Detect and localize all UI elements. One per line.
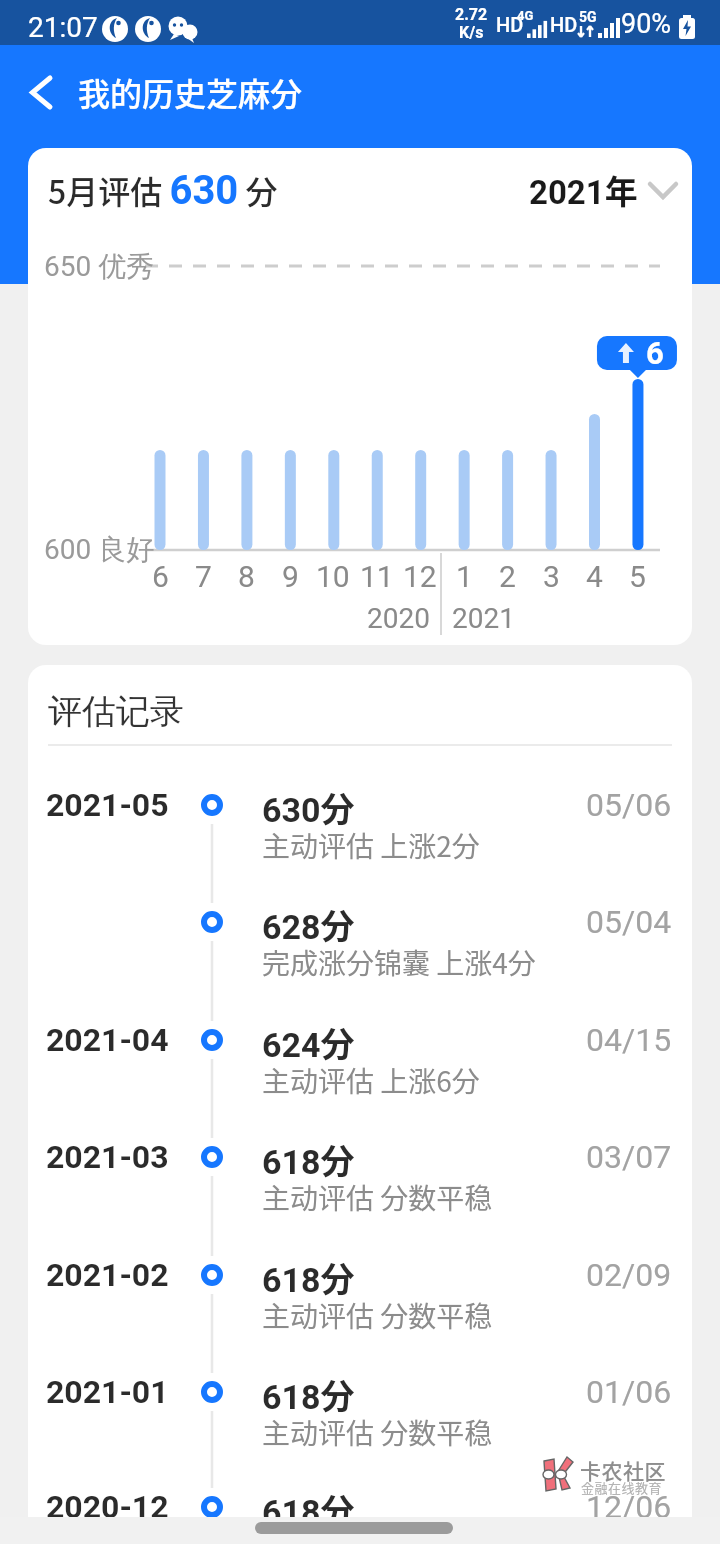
staticText: 7: [195, 559, 212, 594]
staticText: 650 优秀: [44, 249, 155, 283]
button[interactable]: [28, 1449, 692, 1544]
staticText: 10: [316, 559, 350, 594]
staticText: 630分: [262, 783, 355, 827]
staticText: 11: [360, 559, 394, 594]
staticText: 2021-02: [46, 1256, 169, 1294]
staticText: 2021-03: [46, 1138, 169, 1176]
staticText: 我的历史芝麻分: [78, 69, 303, 115]
staticText: 评估记录: [48, 690, 184, 733]
staticText: 5: [629, 559, 646, 594]
button[interactable]: [28, 747, 692, 863]
staticText: 90%: [621, 8, 672, 40]
staticText: 618分: [262, 1485, 355, 1529]
staticText: 21:07: [28, 11, 98, 44]
staticText: HD: [550, 13, 578, 36]
staticText: 02/09: [586, 1256, 672, 1294]
staticText: 5G: [579, 9, 597, 25]
staticText: 2021年: [529, 166, 638, 214]
button[interactable]: [28, 1217, 692, 1333]
staticText: K/s: [459, 23, 484, 42]
staticText: 2021-04: [46, 1021, 169, 1059]
button[interactable]: [28, 864, 692, 980]
staticText: 2020-12: [46, 1488, 169, 1526]
staticText: 3: [543, 559, 560, 594]
button[interactable]: [14, 69, 68, 115]
staticText: 完成涨分锦囊 上涨4分: [262, 942, 536, 982]
staticText: 1: [456, 559, 473, 594]
staticText: 03/07: [586, 1138, 672, 1176]
staticText: 618分: [262, 1253, 355, 1297]
staticText: HD: [496, 13, 524, 36]
staticText: 624分: [262, 1018, 355, 1062]
staticText: 628分: [262, 900, 355, 944]
staticText: 5月评估 630 分: [48, 167, 278, 214]
staticText: 主动评估 分数平稳: [262, 1295, 493, 1335]
staticText: 2020: [367, 602, 430, 635]
staticText: 9: [282, 559, 299, 594]
staticText: 600 良好: [44, 532, 155, 566]
staticText: 主动评估 上涨2分: [262, 825, 480, 865]
staticText: 12/06: [586, 1488, 672, 1526]
staticText: 04/15: [586, 1021, 672, 1059]
staticText: 6: [646, 335, 664, 371]
staticText: 卡农社区: [580, 1455, 666, 1485]
staticText: 2021-01: [46, 1373, 169, 1411]
staticText: 金融在线教育: [581, 1478, 663, 1497]
staticText: 12: [403, 559, 437, 594]
staticText: 2: [499, 559, 516, 594]
button[interactable]: 2021年: [512, 164, 678, 216]
staticText: 4: [586, 559, 603, 594]
staticText: 主动评估 分数平稳: [262, 1527, 493, 1544]
staticText: 05/06: [586, 786, 672, 824]
staticText: 6: [152, 559, 169, 594]
button[interactable]: [28, 1099, 692, 1215]
staticText: 01/06: [586, 1373, 672, 1411]
staticText: 8: [238, 559, 255, 594]
staticText: 主动评估 分数平稳: [262, 1412, 493, 1452]
staticText: 4G: [517, 8, 534, 23]
staticText: 2.72: [455, 5, 488, 24]
button[interactable]: [28, 982, 692, 1098]
staticText: 618分: [262, 1135, 355, 1179]
staticText: 主动评估 上涨6分: [262, 1060, 480, 1100]
staticText: 05/04: [586, 903, 672, 941]
button[interactable]: [28, 1334, 692, 1450]
staticText: 2021: [452, 602, 515, 635]
staticText: 618分: [262, 1370, 355, 1414]
staticText: 2021-05: [46, 786, 169, 824]
staticText: 主动评估 分数平稳: [262, 1177, 493, 1217]
